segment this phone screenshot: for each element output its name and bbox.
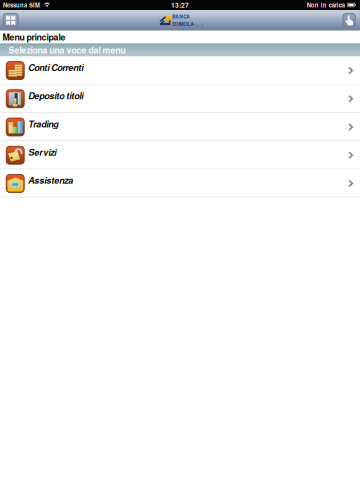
staticText: S.p.A. xyxy=(195,23,204,28)
button[interactable]: Conti Correnti xyxy=(0,56,360,85)
button[interactable]: Griglia xyxy=(3,14,18,27)
staticText: BANCA xyxy=(172,13,190,20)
staticText: Seleziona una voce dal menu xyxy=(8,44,125,56)
button[interactable]: Assistenza xyxy=(0,169,360,197)
button[interactable]: Servizi xyxy=(0,141,360,169)
button[interactable]: Trading xyxy=(0,113,360,141)
staticText: Non in carica xyxy=(307,1,345,9)
staticText: 13:27 xyxy=(171,0,189,10)
staticText: Assistenza xyxy=(28,174,73,187)
staticText: Menu principale xyxy=(3,31,66,43)
staticText: Trading xyxy=(28,117,58,130)
staticText: Conti Correnti xyxy=(28,61,83,74)
staticText: Deposito titoli xyxy=(28,89,83,102)
staticText: Servizi xyxy=(28,146,56,158)
staticText: DI IMOLA xyxy=(172,20,194,28)
button[interactable]: Tocco xyxy=(343,14,355,27)
button[interactable]: Deposito titoli xyxy=(0,85,360,113)
staticText: Nessuna SIM xyxy=(3,1,40,9)
